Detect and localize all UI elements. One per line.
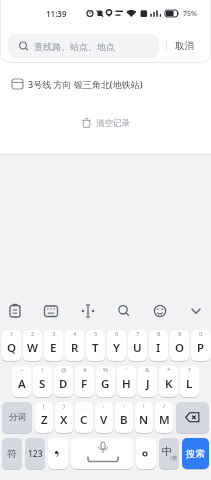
staticText: T [92, 340, 99, 356]
staticText: 0 [199, 330, 203, 338]
staticText: ; [123, 402, 125, 410]
staticText: 7 [136, 330, 140, 338]
button[interactable]: 9 [170, 330, 189, 361]
staticText: 9 [178, 330, 182, 338]
button[interactable]: 搜索 [182, 438, 209, 469]
staticText: ' [126, 366, 128, 374]
staticText: G [101, 376, 110, 392]
button[interactable] [150, 302, 168, 320]
staticText: Z [41, 412, 48, 428]
staticText: ! [42, 366, 44, 374]
button[interactable]: / [155, 402, 173, 433]
button[interactable]: ! [33, 366, 52, 397]
button[interactable] [71, 438, 133, 469]
staticText: X [60, 412, 68, 428]
staticText: & [145, 366, 150, 374]
button[interactable]: 中 [159, 438, 179, 469]
staticText: * [167, 366, 171, 374]
button[interactable]: ? [180, 366, 199, 397]
staticText: 8 [157, 330, 161, 338]
button[interactable]: * [159, 366, 178, 397]
staticText: U [133, 340, 142, 356]
staticText: 75% [183, 9, 197, 19]
staticText: ) [63, 402, 65, 410]
staticText: # [83, 366, 87, 374]
staticText: O [175, 340, 185, 356]
staticText: M [159, 412, 170, 428]
button[interactable]: 5 [86, 330, 105, 361]
staticText: C [80, 412, 88, 428]
staticText: /英 [170, 454, 178, 462]
button[interactable]: 2 [23, 330, 42, 361]
button[interactable]: ~ [12, 366, 31, 397]
staticText: R [71, 340, 79, 356]
staticText: D [59, 376, 68, 392]
button[interactable] [48, 438, 68, 469]
button[interactable] [42, 302, 60, 320]
staticText: I [156, 340, 161, 356]
button[interactable]: 符 [2, 438, 22, 469]
button[interactable] [136, 438, 156, 469]
staticText: S [39, 376, 46, 392]
button[interactable]: % [96, 366, 115, 397]
staticText: / [163, 402, 166, 410]
staticText: 查线路、站点、地点 [34, 41, 115, 52]
button[interactable]: ' [117, 366, 136, 397]
staticText: ! [143, 402, 145, 410]
staticText: : [103, 402, 105, 410]
staticText: E [50, 340, 57, 356]
staticText: L [186, 376, 193, 392]
staticText: 符 [7, 448, 17, 460]
button[interactable]: 4 [65, 330, 84, 361]
staticText: 3号线 方向 银三角北(地铁站) [28, 78, 143, 90]
button[interactable] [176, 402, 209, 433]
staticText: V [100, 412, 108, 428]
button[interactable]: 取消 [163, 34, 206, 58]
staticText: 5 [94, 330, 98, 338]
button[interactable]: 3号线 方向 银三角北(地铁站) [0, 71, 211, 97]
button[interactable]: ; [115, 402, 133, 433]
button[interactable]: 123 [25, 438, 45, 469]
staticText: 11:39 [46, 8, 67, 19]
button[interactable]: 7 [128, 330, 147, 361]
button[interactable]: 6 [107, 330, 126, 361]
staticText: 、 [81, 402, 87, 410]
staticText: 清空记录 [96, 118, 130, 129]
staticText: A [18, 376, 26, 392]
staticText: 搜索 [186, 448, 205, 460]
button[interactable]: 1 [2, 330, 21, 361]
staticText: H [122, 376, 131, 392]
button[interactable]: 8 [149, 330, 168, 361]
staticText: Q [7, 340, 17, 356]
button[interactable]: ) [55, 402, 73, 433]
staticText: J [146, 376, 150, 392]
button[interactable]: 3 [44, 330, 63, 361]
button[interactable] [114, 302, 132, 320]
staticText: B [120, 412, 128, 428]
staticText: 中 [162, 445, 173, 458]
button[interactable] [186, 302, 204, 320]
staticText: F [81, 376, 88, 392]
staticText: N [139, 412, 149, 428]
button[interactable]: 清空记录 [81, 117, 130, 129]
staticText: 3 [52, 330, 56, 338]
button[interactable]: & [138, 366, 157, 397]
staticText: Y [113, 340, 120, 356]
button[interactable]: 查线路、站点、地点 [8, 34, 159, 58]
button[interactable] [78, 302, 96, 320]
button[interactable]: ( [35, 402, 53, 433]
button[interactable]: 0 [191, 330, 210, 361]
staticText: % [103, 366, 108, 374]
staticText: 4 [73, 330, 77, 338]
button[interactable]: 分词 [2, 402, 32, 433]
button[interactable]: : [95, 402, 113, 433]
staticText: 分词 [9, 412, 26, 423]
button[interactable] [6, 302, 24, 320]
staticText: 2 [31, 330, 35, 338]
staticText: ~ [20, 366, 24, 374]
staticText: 取消 [175, 40, 194, 52]
button[interactable]: ! [135, 402, 153, 433]
button[interactable]: 、 [75, 402, 93, 433]
button[interactable]: # [75, 366, 94, 397]
button[interactable]: @ [54, 366, 73, 397]
